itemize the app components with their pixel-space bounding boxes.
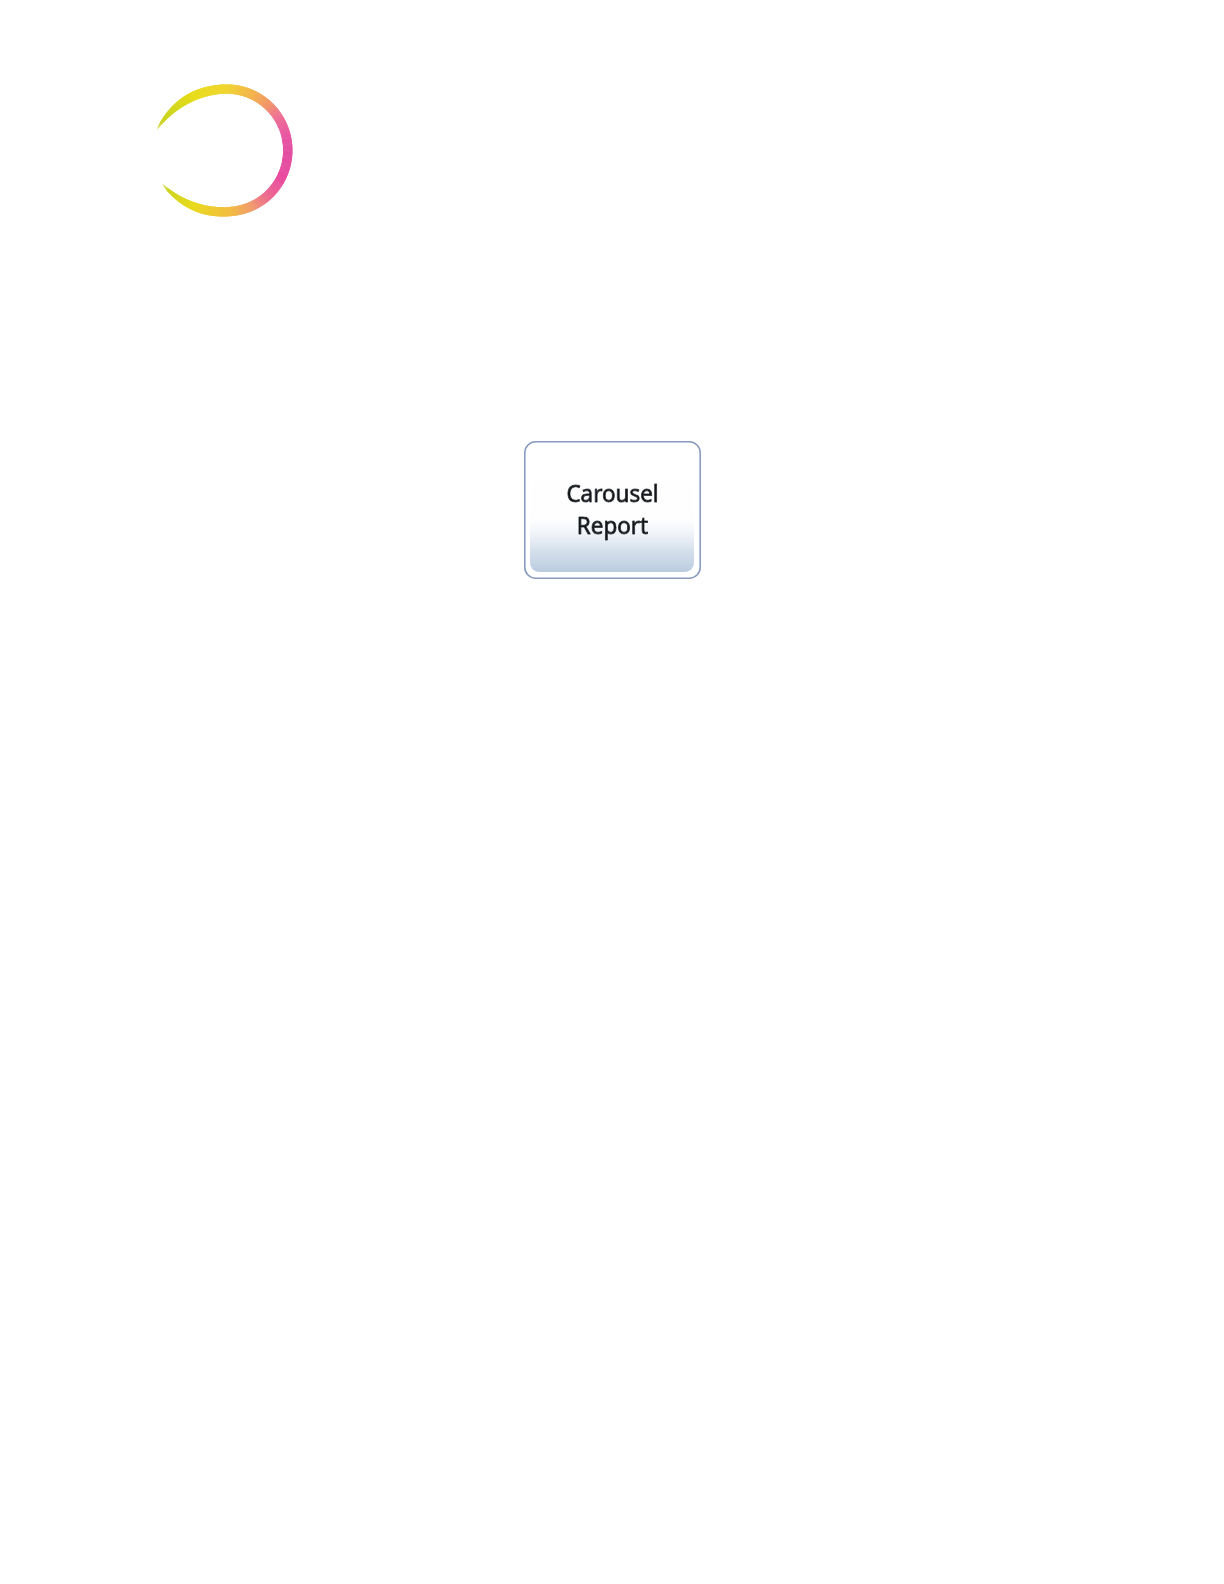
staticText: Carousel [566, 477, 659, 509]
staticText: Carousel [566, 477, 659, 509]
button[interactable]: Carousel [524, 441, 701, 579]
staticText: Report [577, 509, 648, 541]
staticText: Report [577, 509, 648, 541]
other: Company logo [150, 78, 302, 224]
